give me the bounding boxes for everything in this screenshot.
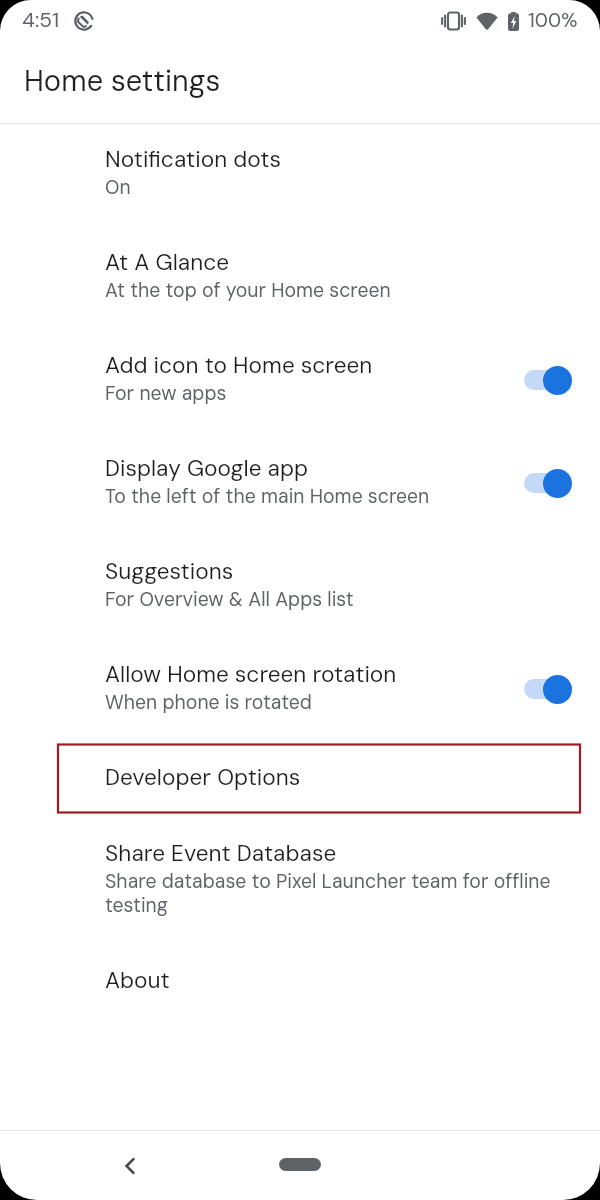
button[interactable]: At A Glance	[0, 226, 600, 329]
staticText: Developer Options	[105, 763, 301, 792]
button[interactable]: Add icon to Home screen	[0, 329, 600, 432]
staticText: 4:51	[22, 6, 60, 33]
button[interactable]: Share Event Database	[0, 817, 600, 944]
staticText: At A Glance	[105, 248, 230, 277]
button[interactable]: Toggle Allow Home screen rotation	[524, 674, 572, 704]
staticText: Share Event Database	[105, 839, 337, 868]
button[interactable]: Toggle Add icon to Home screen	[524, 365, 572, 395]
staticText: When phone is rotated	[105, 690, 312, 715]
button[interactable]: Back	[106, 1142, 154, 1190]
button[interactable]: Toggle Display Google app	[524, 468, 572, 498]
staticText: Notification dots	[105, 145, 282, 174]
staticText: Share database to Pixel Launcher team fo…	[105, 869, 572, 918]
button[interactable]: Display Google app	[0, 432, 600, 535]
button[interactable]: About	[0, 944, 600, 1020]
staticText: Home settings	[24, 62, 221, 100]
staticText: Allow Home screen rotation	[105, 660, 397, 689]
staticText: About	[105, 966, 170, 995]
button[interactable]: Allow Home screen rotation	[0, 638, 600, 741]
staticText: To the left of the main Home screen	[105, 484, 430, 509]
staticText: At the top of your Home screen	[105, 278, 391, 303]
staticText: 100%	[528, 7, 578, 33]
staticText: Suggestions	[105, 557, 234, 586]
button[interactable]: Home	[270, 1154, 330, 1178]
button[interactable]: Developer Options	[0, 741, 600, 817]
button[interactable]: Notification dots	[0, 123, 600, 226]
staticText: For new apps	[105, 381, 227, 406]
staticText: Add icon to Home screen	[105, 351, 373, 380]
staticText: Display Google app	[105, 454, 309, 483]
staticText: On	[105, 175, 131, 200]
staticText: For Overview & All Apps list	[105, 587, 354, 612]
button[interactable]: Suggestions	[0, 535, 600, 638]
